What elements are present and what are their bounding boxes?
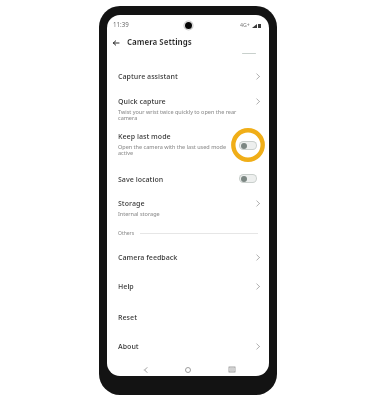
staticText: About — [118, 342, 139, 352]
staticText: 11:39 — [113, 20, 129, 28]
staticText: Help — [118, 282, 134, 292]
button[interactable]: Recent apps — [222, 360, 242, 376]
staticText: Keep last mode — [118, 132, 171, 142]
staticText: Open the camera with the last used mode … — [118, 143, 227, 157]
button[interactable]: Storage — [107, 199, 269, 225]
button[interactable]: Save location — [107, 175, 269, 201]
button[interactable]: About — [107, 342, 269, 368]
staticText: Camera feedback — [118, 253, 178, 263]
staticText: 4G+ — [240, 21, 250, 28]
staticText: Reset — [118, 313, 137, 323]
button[interactable]: Capture assistant — [107, 72, 269, 98]
staticText: Others — [118, 230, 135, 237]
button[interactable]: Home — [178, 360, 198, 376]
button[interactable]: Keep last mode — [107, 132, 269, 164]
staticText: Internal storage — [118, 210, 160, 217]
button[interactable]: Back — [135, 360, 155, 376]
button[interactable]: Camera feedback — [107, 253, 269, 279]
button[interactable]: Navigate up — [108, 35, 124, 51]
staticText: Storage — [118, 199, 145, 209]
staticText: Save location — [118, 175, 164, 185]
staticText: Quick capture — [118, 97, 166, 107]
button[interactable]: Help — [107, 282, 269, 308]
staticText: Twist your wrist twice quickly to open t… — [118, 108, 237, 122]
button[interactable]: Save location switch, off — [231, 165, 265, 191]
button[interactable]: Quick capture — [107, 97, 269, 129]
staticText: Capture assistant — [118, 72, 178, 82]
button[interactable]: Keep last mode switch, off — [231, 129, 265, 161]
staticText: Camera Settings — [127, 37, 192, 48]
button[interactable]: Reset — [107, 313, 269, 339]
